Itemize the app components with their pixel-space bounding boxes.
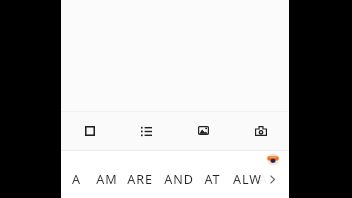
- button[interactable]: AM: [89, 167, 125, 191]
- button[interactable]: Camera: [232, 111, 289, 150]
- staticText: AT: [204, 171, 221, 188]
- staticText: A: [72, 171, 81, 188]
- button[interactable]: AND: [157, 167, 201, 191]
- button[interactable]: Insert image: [175, 111, 232, 150]
- staticText: AND: [164, 171, 194, 188]
- staticText: AM: [96, 171, 118, 188]
- button[interactable]: A: [65, 167, 88, 191]
- button[interactable]: ARE: [120, 167, 160, 191]
- button[interactable]: A: [252, 167, 275, 191]
- button[interactable]: AT: [197, 167, 228, 191]
- staticText: A: [259, 171, 268, 188]
- button[interactable]: Sticker suggestion: [266, 153, 280, 167]
- button[interactable]: Bulleted list: [118, 111, 175, 150]
- button[interactable]: ALW: [226, 167, 269, 191]
- staticText: ALW: [233, 171, 262, 188]
- staticText: ARE: [127, 171, 153, 188]
- button[interactable]: Text box: [61, 111, 118, 150]
- button[interactable]: More suggestions: [265, 171, 279, 188]
